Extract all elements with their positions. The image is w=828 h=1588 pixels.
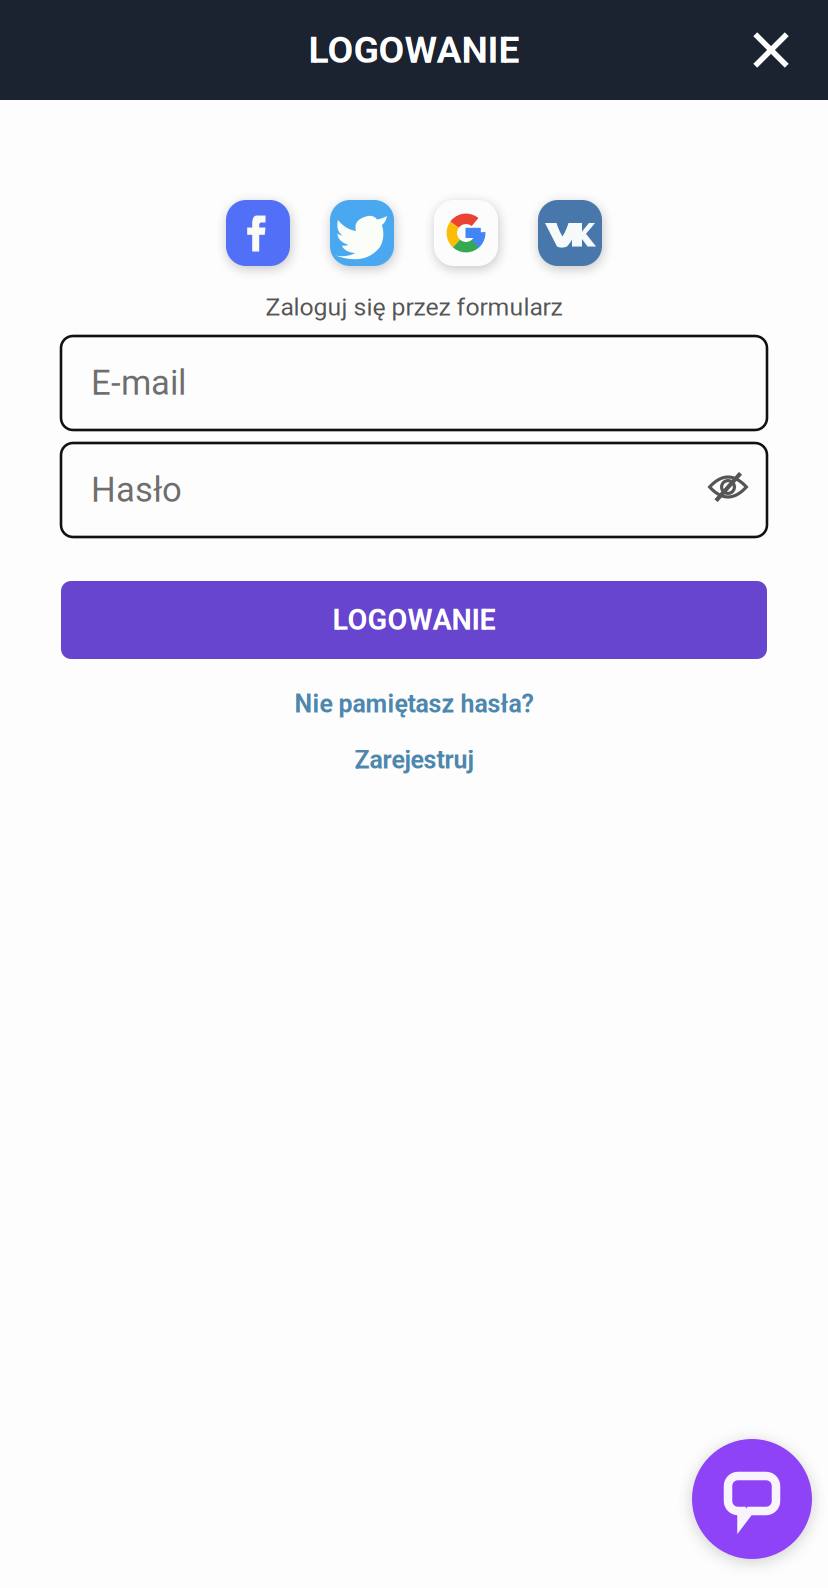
button[interactable]: Zaloguj przez Twitter <box>330 200 394 266</box>
staticText: Nie pamiętasz hasła? <box>294 689 533 719</box>
staticText: Zarejestruj <box>354 745 473 775</box>
staticText: Zaloguj się przez formularz <box>265 292 562 322</box>
staticText: E-mail <box>91 363 186 403</box>
button[interactable]: Pokaż hasło <box>703 454 753 526</box>
staticText: Hasło <box>91 470 182 510</box>
button[interactable]: Zarejestruj <box>324 735 504 785</box>
button[interactable]: Zamknij <box>723 0 819 100</box>
button[interactable]: Zaloguj przez Google <box>434 200 498 266</box>
button[interactable]: Czat <box>692 1439 812 1559</box>
button[interactable]: Zaloguj przez VK <box>538 200 602 266</box>
button[interactable]: Nie pamiętasz hasła? <box>269 679 559 729</box>
button[interactable]: Zaloguj przez Facebook <box>226 200 290 266</box>
button[interactable]: LOGOWANIE <box>61 581 767 659</box>
staticText: LOGOWANIE <box>332 603 495 637</box>
staticText: LOGOWANIE <box>308 28 519 72</box>
